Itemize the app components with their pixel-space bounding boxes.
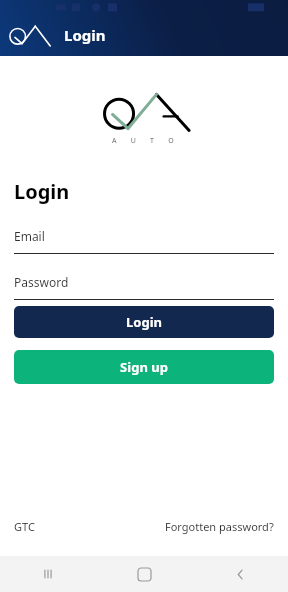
button[interactable]: Forgotten password? <box>165 519 274 534</box>
staticText: Sign up <box>120 358 168 376</box>
button[interactable]: GTC <box>14 519 35 534</box>
staticText: Forgotten password? <box>165 519 274 534</box>
staticText: Login <box>126 313 162 331</box>
button[interactable]: Password <box>14 274 274 300</box>
other: QA Auto logo <box>96 90 192 134</box>
button[interactable]: Back <box>192 556 288 592</box>
staticText: Password <box>14 274 69 290</box>
staticText: Login <box>64 25 106 45</box>
staticText: Login <box>14 178 70 205</box>
button[interactable]: Login <box>14 306 274 338</box>
button[interactable]: Home <box>96 556 192 592</box>
staticText: GTC <box>14 519 35 534</box>
staticText: A U T O <box>112 136 176 146</box>
button[interactable]: Recents <box>0 556 96 592</box>
button[interactable]: Email <box>14 228 274 254</box>
button[interactable]: Sign up <box>14 350 274 384</box>
staticText: Email <box>14 228 45 244</box>
other: QA Auto logo <box>8 22 52 48</box>
